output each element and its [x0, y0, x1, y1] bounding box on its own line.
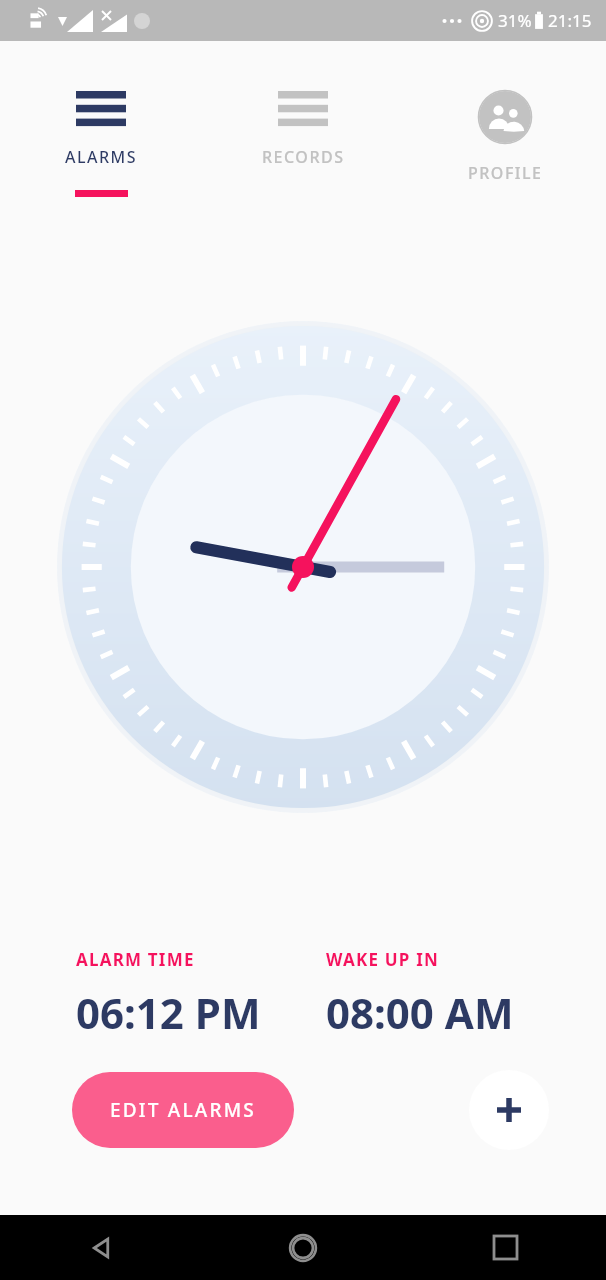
- staticText: EDIT ALARMS: [110, 1097, 256, 1123]
- staticText: RECORDS: [262, 146, 345, 168]
- staticText: ALARMS: [65, 146, 138, 168]
- other: Home: [288, 1233, 318, 1263]
- staticText: WAKE UP IN: [326, 948, 440, 971]
- button[interactable]: PROFILE: [404, 41, 606, 203]
- button[interactable]: Add alarm: [469, 1070, 549, 1150]
- staticText: PROFILE: [468, 162, 543, 184]
- staticText: 21:15: [548, 9, 592, 32]
- button[interactable]: Home: [202, 1215, 404, 1280]
- staticText: ALARM TIME: [76, 948, 195, 971]
- staticText: 06:12 PM: [76, 984, 261, 1041]
- staticText: 31%: [498, 9, 532, 32]
- button[interactable]: RECORDS: [202, 41, 404, 190]
- button[interactable]: Back: [0, 1215, 202, 1280]
- button[interactable]: EDIT ALARMS: [72, 1072, 294, 1148]
- button[interactable]: ALARMS: [0, 41, 202, 197]
- other: Back: [88, 1235, 114, 1261]
- button[interactable]: Recents: [404, 1215, 606, 1280]
- other: Recents: [494, 1236, 517, 1259]
- staticText: 08:00 AM: [326, 984, 514, 1041]
